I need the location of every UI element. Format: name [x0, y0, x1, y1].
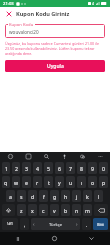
- staticText: Türkçe: [49, 222, 63, 228]
- button[interactable]: ,: [20, 218, 29, 230]
- staticText: h: [64, 193, 68, 200]
- button[interactable]: e: [22, 176, 31, 188]
- button[interactable]: a: [6, 190, 15, 202]
- button[interactable]: r: [33, 176, 42, 188]
- staticText: Kupon Kodu: [9, 22, 34, 28]
- button[interactable]: 1: [2, 162, 10, 174]
- button[interactable]: z: [17, 204, 26, 216]
- staticText: k: [86, 193, 89, 200]
- staticText: r: [36, 179, 39, 186]
- staticText: 2: [15, 165, 18, 172]
- staticText: 3: [25, 165, 28, 172]
- button[interactable]: c: [39, 204, 48, 216]
- button[interactable]: Sil: [94, 204, 108, 216]
- button[interactable]: Kapat: [4, 9, 13, 18]
- staticText: t: [48, 179, 50, 186]
- staticText: p: [102, 179, 106, 186]
- staticText: ›: [76, 221, 78, 228]
- button[interactable]: 9: [88, 162, 97, 174]
- button[interactable]: Uygula: [5, 60, 105, 72]
- button[interactable]: v: [50, 204, 59, 216]
- button[interactable]: .: [82, 218, 91, 230]
- staticText: j: [76, 193, 78, 200]
- button[interactable]: n: [72, 204, 81, 216]
- button[interactable]: j: [72, 190, 81, 202]
- staticText: 9: [91, 165, 94, 172]
- staticText: g: [53, 193, 57, 200]
- button[interactable]: 2: [12, 162, 20, 174]
- button[interactable]: h: [61, 190, 70, 202]
- staticText: 4: [92, 1, 95, 6]
- staticText: n: [75, 207, 79, 214]
- staticText: y: [58, 179, 61, 186]
- staticText: v: [53, 207, 56, 214]
- button[interactable]: ‹: [31, 218, 80, 230]
- staticText: d: [31, 193, 35, 200]
- button[interactable]: 4: [33, 162, 42, 174]
- staticText: Uygula: [47, 63, 64, 70]
- button[interactable]: Klavyeyi kapat: [73, 232, 110, 245]
- button[interactable]: f: [39, 190, 48, 202]
- button[interactable]: ı: [77, 176, 86, 188]
- staticText: 5: [47, 165, 50, 172]
- button[interactable]: 7: [66, 162, 75, 174]
- button[interactable]: s: [17, 190, 26, 202]
- staticText: l: [98, 193, 100, 200]
- button[interactable]: GIF: [19, 152, 37, 161]
- button[interactable]: k: [83, 190, 92, 202]
- staticText: f: [43, 193, 45, 200]
- button[interactable]: g: [50, 190, 59, 202]
- button[interactable]: !#1: [2, 218, 18, 230]
- button[interactable]: Ara: [37, 152, 55, 161]
- staticText: e: [25, 179, 28, 186]
- staticText: Kupon Kodu Giriniz: [16, 10, 70, 18]
- staticText: !#1: [7, 221, 14, 227]
- button[interactable]: 8: [77, 162, 86, 174]
- button[interactable]: q: [2, 176, 10, 188]
- button[interactable]: p: [99, 176, 108, 188]
- staticText: o: [91, 179, 95, 186]
- staticText: m: [85, 207, 90, 214]
- staticText: 4: [36, 165, 39, 172]
- button[interactable]: o: [88, 176, 97, 188]
- button[interactable]: d: [28, 190, 37, 202]
- staticText: z: [20, 207, 23, 214]
- button[interactable]: Büyük harf: [2, 204, 15, 216]
- staticText: 1: [5, 165, 8, 172]
- staticText: c: [42, 207, 45, 214]
- button[interactable]: 0: [99, 162, 108, 174]
- staticText: 0: [102, 165, 105, 172]
- button[interactable]: Ana ekran: [36, 232, 73, 245]
- button[interactable]: Mikrofon: [55, 152, 73, 161]
- button[interactable]: t: [44, 176, 53, 188]
- button[interactable]: l: [94, 190, 103, 202]
- button[interactable]: 3: [22, 162, 31, 174]
- button[interactable]: m: [83, 204, 92, 216]
- button[interactable]: y: [55, 176, 64, 188]
- staticText: q: [4, 179, 8, 186]
- button[interactable]: b: [61, 204, 70, 216]
- button[interactable]: Bitti: [93, 218, 108, 230]
- staticText: b: [64, 207, 68, 214]
- staticText: 21:03: [3, 1, 14, 7]
- button[interactable]: Daha fazla: [91, 152, 109, 161]
- staticText: wouvalonci20: [9, 29, 39, 35]
- staticText: w: [14, 179, 19, 186]
- button[interactable]: Son kullanılanlar: [0, 232, 36, 245]
- staticText: a: [9, 193, 12, 200]
- button[interactable]: [5, 24, 105, 38]
- staticText: ı: [81, 179, 83, 186]
- staticText: s: [20, 193, 23, 200]
- button[interactable]: x: [28, 204, 37, 216]
- button[interactable]: w: [12, 176, 20, 188]
- button[interactable]: u: [66, 176, 75, 188]
- staticText: Üzgünüz, bu kuponu sadece Cumartesi günl…: [5, 41, 105, 56]
- staticText: 6: [58, 165, 61, 172]
- button[interactable]: Tema: [73, 152, 91, 161]
- staticText: x: [31, 207, 34, 214]
- staticText: ‹: [33, 221, 35, 228]
- staticText: 7: [69, 165, 72, 172]
- button[interactable]: Emoji: [1, 152, 19, 161]
- button[interactable]: 5: [44, 162, 53, 174]
- button[interactable]: 6: [55, 162, 64, 174]
